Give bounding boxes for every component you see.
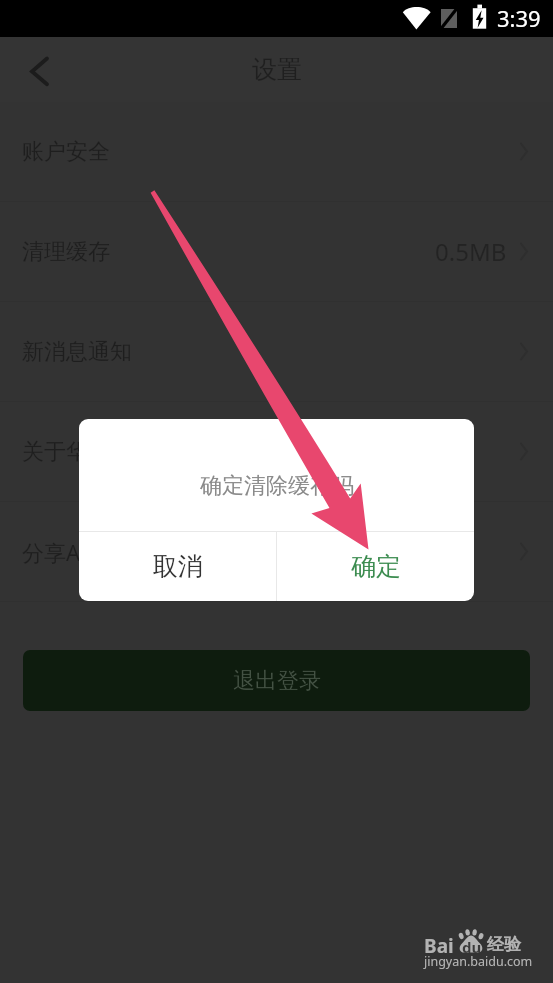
button[interactable]: 分享APP [0,502,553,601]
button[interactable]: 清理缓存 [0,202,553,301]
staticText: 0.5MB [435,235,507,268]
button[interactable]: 关于华为 [0,402,553,501]
staticText: 退出登录 [233,667,321,695]
staticText: 取消 [153,551,203,582]
staticText: Bai [424,933,454,959]
staticText: 设置 [252,54,302,85]
button[interactable]: 确定 [277,532,474,601]
staticText: 3:39 [497,3,541,33]
button[interactable]: Back [10,41,68,99]
button[interactable]: 退出登录 [23,650,530,711]
staticText: 分享APP [22,537,107,567]
staticText: jingyan.baidu.com [424,953,533,970]
button[interactable]: 取消 [79,532,276,601]
staticText: 确定 [351,551,401,582]
staticText: 清理缓存 [22,238,110,266]
staticText: 账户安全 [22,138,110,166]
staticText: 确定清除缓存吗 [200,472,354,500]
button[interactable]: 新消息通知 [0,302,553,401]
staticText: 新消息通知 [22,338,132,366]
staticText: 经验 [487,934,521,955]
staticText: 关于华为 [22,438,110,466]
button[interactable]: 账户安全 [0,102,553,201]
staticText: du [462,937,482,957]
